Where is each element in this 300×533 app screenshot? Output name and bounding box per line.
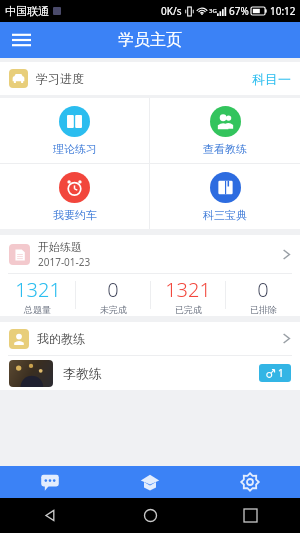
staticText: 2017-01-23 [38, 255, 91, 269]
button[interactable]: 科目一 [252, 71, 291, 87]
staticText: 1 [278, 366, 284, 380]
staticText: 67% [229, 4, 249, 18]
staticText: 查看教练 [203, 142, 247, 156]
staticText: 已排除 [250, 304, 277, 315]
button[interactable]: 1321 [151, 274, 225, 316]
staticText: 学习进度 [36, 71, 84, 86]
button[interactable]: Messages [0, 466, 100, 498]
button[interactable]: 开始练题 [0, 235, 300, 273]
staticText: 我的教练 [37, 331, 85, 346]
button[interactable]: 学习进度 [0, 62, 300, 95]
staticText: 已完成 [175, 304, 202, 315]
staticText: 学员主页 [118, 30, 182, 50]
button[interactable]: Settings [200, 466, 300, 498]
staticText: 0 [257, 276, 269, 303]
button[interactable]: 科三宝典 [150, 164, 300, 229]
staticText: 理论练习 [53, 142, 97, 156]
staticText: 0 [107, 276, 119, 303]
button[interactable]: 1321 [0, 274, 75, 316]
button[interactable]: 查看教练 [150, 98, 300, 163]
button[interactable]: Study [100, 466, 200, 498]
button[interactable]: 李教练 [0, 356, 300, 390]
staticText: 科三宝典 [203, 208, 247, 222]
button[interactable]: 0 [76, 274, 150, 316]
staticText: 未完成 [100, 304, 127, 315]
button[interactable]: 理论练习 [0, 98, 149, 163]
staticText: 3G [209, 7, 217, 15]
staticText: 中国联通 [5, 4, 49, 18]
staticText: 0K/s [161, 4, 182, 18]
staticText: 我要约车 [53, 208, 97, 222]
staticText: 开始练题 [38, 240, 82, 254]
staticText: 总题量 [24, 304, 51, 315]
button[interactable]: Menu [0, 22, 42, 58]
staticText: 1321 [165, 276, 211, 303]
button[interactable]: 我的教练 [0, 322, 300, 355]
button[interactable]: 我要约车 [0, 164, 149, 229]
button[interactable]: 0 [226, 274, 300, 316]
staticText: 10:12 [270, 4, 296, 18]
staticText: 1321 [15, 276, 61, 303]
staticText: 李教练 [63, 365, 102, 381]
